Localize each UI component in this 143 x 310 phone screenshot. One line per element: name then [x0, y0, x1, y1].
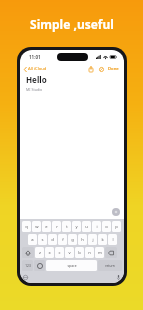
staticText: o [105, 224, 108, 230]
button[interactable]: n [85, 247, 94, 258]
button[interactable]: Backspace [105, 247, 117, 258]
button[interactable]: r [52, 221, 61, 232]
staticText: MI Studio [26, 87, 43, 92]
button[interactable]: u [82, 221, 91, 232]
button[interactable]: p [112, 221, 121, 232]
button[interactable]: m [95, 247, 104, 258]
staticText: r [56, 224, 58, 230]
button[interactable]: Shift [22, 247, 34, 258]
button[interactable]: y [72, 221, 81, 232]
button[interactable]: Share [87, 65, 95, 73]
button[interactable]: f [58, 234, 67, 245]
button[interactable]: z [35, 247, 44, 258]
staticText: All iCloud [28, 66, 47, 72]
button[interactable]: h [78, 234, 87, 245]
button[interactable]: Add [112, 208, 120, 216]
button[interactable]: d [48, 234, 57, 245]
button[interactable]: j [88, 234, 97, 245]
staticText: p [115, 224, 118, 230]
staticText: u [85, 224, 88, 230]
button[interactable]: Dictate [115, 274, 122, 281]
staticText: Done [108, 66, 119, 72]
button[interactable]: e [42, 221, 51, 232]
staticText: d [51, 237, 54, 243]
staticText: v [68, 250, 71, 256]
staticText: e [45, 224, 48, 230]
button[interactable]: o [102, 221, 111, 232]
staticText: s [41, 237, 44, 243]
button[interactable]: All iCloud [24, 66, 47, 72]
button[interactable]: l [108, 234, 117, 245]
staticText: x [48, 250, 51, 256]
staticText: m [98, 250, 102, 256]
button[interactable]: i [92, 221, 101, 232]
button[interactable]: v [65, 247, 74, 258]
button[interactable]: 123 [22, 260, 33, 271]
staticText: return [105, 264, 115, 268]
staticText: y [75, 224, 78, 230]
staticText: space [67, 263, 77, 268]
staticText: h [81, 237, 84, 243]
staticText: n [88, 250, 91, 256]
button[interactable]: t [62, 221, 71, 232]
staticText: w [35, 224, 39, 230]
button[interactable]: a [28, 234, 37, 245]
staticText: t [66, 224, 68, 230]
staticText: q [25, 224, 28, 230]
staticText: k [101, 237, 104, 243]
button[interactable]: k [98, 234, 107, 245]
staticText: Hello [26, 74, 47, 85]
button[interactable]: space [46, 260, 97, 271]
staticText: c [58, 250, 61, 256]
staticText: l [112, 237, 114, 243]
button[interactable]: Emoji [34, 260, 45, 271]
staticText: 11:01 [29, 54, 41, 60]
staticText: a [31, 237, 34, 243]
button[interactable]: Done [107, 66, 120, 72]
button[interactable]: c [55, 247, 64, 258]
staticText: b [78, 250, 81, 256]
staticText: f [62, 237, 64, 243]
staticText: j [92, 237, 94, 243]
button[interactable]: w [32, 221, 41, 232]
staticText: z [39, 250, 41, 256]
button[interactable]: b [75, 247, 84, 258]
staticText: Simple ,useful [30, 16, 114, 32]
button[interactable]: g [68, 234, 77, 245]
staticText: g [71, 237, 74, 243]
button[interactable]: New note [97, 65, 105, 73]
button[interactable]: Change keyboard [22, 274, 29, 281]
button[interactable]: s [38, 234, 47, 245]
staticText: 123 [25, 264, 31, 268]
button[interactable]: return [98, 260, 122, 271]
button[interactable]: q [22, 221, 31, 232]
button[interactable]: x [45, 247, 54, 258]
staticText: i [96, 224, 98, 230]
